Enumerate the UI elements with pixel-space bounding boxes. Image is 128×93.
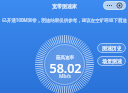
staticText: 场景测速 [102, 58, 122, 64]
staticText: 测速历史 [102, 45, 122, 51]
staticText: 宽带测速家 [52, 3, 77, 9]
staticText: Mb/s [59, 73, 71, 80]
button[interactable]: More options and close [103, 1, 126, 10]
staticText: 已开通100M宽带，测速结果仅供参考，建议在空旷环境下测速 [2, 17, 127, 23]
button[interactable]: 测速历史 [97, 43, 126, 53]
staticText: 58.02 [49, 60, 82, 77]
staticText: 最高速率 [56, 55, 74, 61]
button[interactable]: 场景测速 [97, 56, 126, 66]
